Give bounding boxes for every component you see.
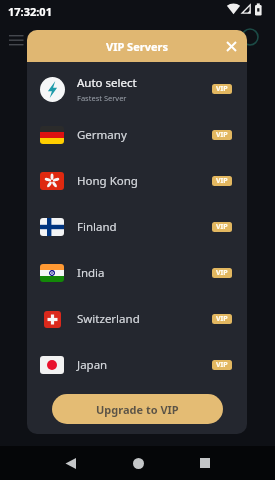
staticText: VIP Servers (106, 39, 168, 54)
staticText: VIP (216, 176, 228, 186)
staticText: Auto select (77, 75, 137, 91)
button[interactable] (59, 452, 81, 474)
staticText: Upgrade to VIP (96, 402, 179, 417)
button[interactable]: Auto select (27, 66, 247, 112)
staticText: VIP (216, 268, 228, 278)
staticText: VIP (216, 314, 228, 324)
button[interactable]: Switzerland (27, 296, 247, 342)
button[interactable]: Japan (27, 342, 247, 388)
staticText: VIP (216, 360, 228, 370)
staticText: Finland (77, 219, 117, 235)
button[interactable]: Finland (27, 204, 247, 250)
button[interactable]: India (27, 250, 247, 296)
button[interactable]: Hong Kong (27, 158, 247, 204)
button[interactable] (194, 452, 216, 474)
button[interactable]: Germany (27, 112, 247, 158)
staticText: Germany (77, 127, 127, 143)
button[interactable] (127, 452, 149, 474)
staticText: VIP (216, 84, 228, 94)
staticText: Hong Kong (77, 173, 138, 189)
staticText: VIP (216, 222, 228, 232)
staticText: VIP (216, 130, 228, 140)
staticText: India (77, 265, 105, 281)
staticText: 17:32:01 (8, 4, 52, 19)
staticText: Switzerland (77, 311, 140, 327)
button[interactable]: Upgrade to VIP (52, 394, 223, 424)
staticText: Japan (77, 357, 108, 373)
staticText: Fastest Server (77, 93, 127, 103)
button[interactable] (215, 30, 247, 62)
